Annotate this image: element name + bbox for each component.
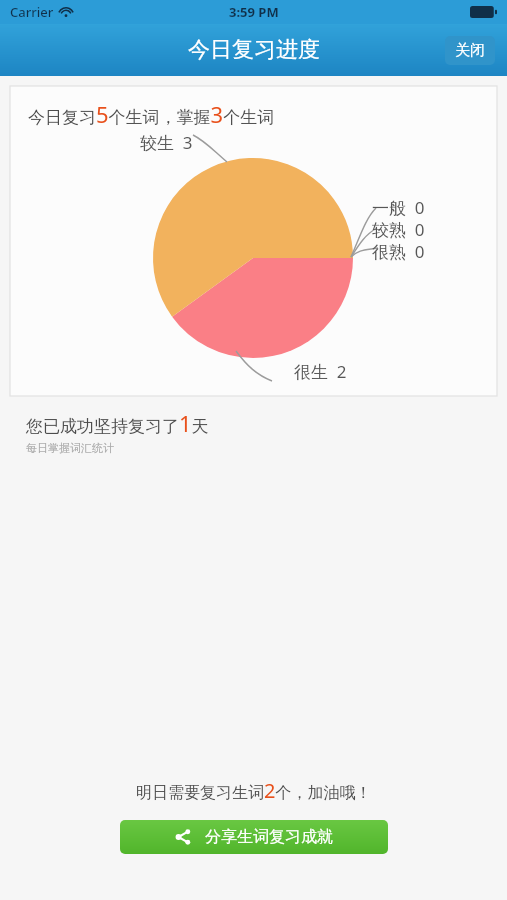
staticText: 一般 0 — [372, 196, 425, 219]
staticText: 分享生词复习成就 — [205, 827, 333, 847]
button[interactable]: 关闭 — [445, 36, 495, 65]
staticText: 较生 3 — [140, 131, 193, 154]
staticText: 3:59 PM — [229, 3, 279, 21]
staticText: 很熟 0 — [372, 240, 425, 263]
other: Battery — [470, 6, 497, 18]
staticText: 每日掌握词汇统计 — [26, 441, 114, 455]
staticText: 您已成功坚持复习了1天 — [26, 408, 209, 438]
staticText: 今日复习进度 — [188, 36, 320, 64]
staticText: Carrier — [10, 3, 54, 21]
staticText: 今日复习5个生词，掌握3个生词 — [28, 99, 275, 129]
staticText: 很生 2 — [294, 360, 347, 383]
staticText: 明日需要复习生词2个，加油哦！ — [136, 777, 372, 804]
button[interactable]: 分享生词复习成就 — [120, 820, 388, 854]
staticText: 较熟 0 — [372, 218, 425, 241]
staticText: 关闭 — [455, 41, 485, 60]
